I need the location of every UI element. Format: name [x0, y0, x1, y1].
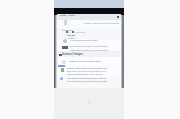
staticText: Connect your account to get started [84, 22, 119, 25]
staticText: service and the new timings that apply n… [67, 80, 108, 82]
button[interactable] [57, 51, 121, 57]
staticText: Here are the changes we made to the new [67, 77, 106, 79]
staticText: get back to you with the information soo… [67, 70, 106, 72]
staticText: we will get back to you shortly with mor… [70, 45, 108, 47]
staticText: Thanks, I have received your request & I… [67, 67, 108, 69]
staticText: lorem ipsum [75, 31, 86, 33]
staticText: ‹ Sales › Brief [58, 14, 75, 17]
button[interactable] [57, 39, 121, 52]
button[interactable] [57, 65, 121, 78]
staticText: Tap add [67, 34, 75, 37]
staticText: Confirm [68, 37, 75, 39]
button[interactable] [57, 14, 121, 20]
staticText: you need regarding the service change [67, 73, 103, 75]
staticText: 1 [69, 31, 71, 33]
staticText: Update from the helpdesk team [69, 60, 102, 63]
staticText: Services Changes [62, 53, 83, 56]
button[interactable] [57, 20, 121, 28]
button[interactable] [57, 77, 121, 88]
staticText: Your request has been logged [70, 39, 98, 41]
button[interactable] [58, 57, 121, 65]
staticText: TO ADDRESS [62, 29, 74, 31]
staticText: information regarding your recent enquir… [70, 49, 109, 51]
